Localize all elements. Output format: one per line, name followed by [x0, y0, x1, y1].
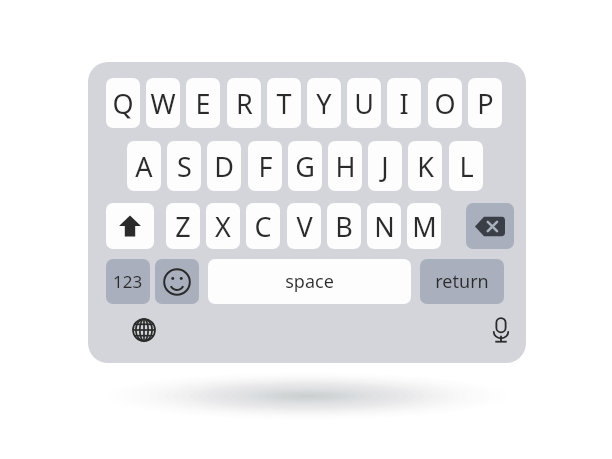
staticText: space [285, 269, 334, 294]
button[interactable]: Y [307, 78, 341, 128]
staticText: W [150, 85, 176, 122]
button[interactable]: M [407, 203, 441, 249]
button[interactable]: space [208, 259, 411, 304]
staticText: Z [175, 208, 191, 245]
button[interactable]: I [387, 78, 421, 128]
button[interactable]: Change keyboard language [126, 312, 162, 348]
button[interactable]: B [327, 203, 361, 249]
button[interactable]: F [248, 141, 282, 191]
button[interactable]: V [287, 203, 321, 249]
button[interactable]: R [227, 78, 261, 128]
staticText: J [381, 148, 389, 185]
staticText: A [135, 148, 153, 185]
button[interactable]: Numbers [106, 259, 150, 304]
staticText: T [276, 85, 292, 122]
staticText: D [214, 148, 234, 185]
button[interactable]: D [207, 141, 241, 191]
staticText: 123 [113, 270, 143, 293]
staticText: I [399, 85, 409, 122]
button[interactable]: Q [106, 78, 140, 128]
staticText: R [236, 85, 253, 122]
staticText: E [195, 85, 211, 122]
button[interactable]: E [186, 78, 220, 128]
staticText: B [335, 208, 353, 245]
button[interactable]: C [246, 203, 280, 249]
button[interactable]: return [420, 259, 504, 304]
button[interactable]: U [347, 78, 381, 128]
button[interactable]: K [408, 141, 442, 191]
button[interactable]: N [367, 203, 401, 249]
button[interactable]: Z [166, 203, 200, 249]
staticText: Y [316, 85, 332, 122]
button[interactable]: S [167, 141, 201, 191]
staticText: F [258, 148, 273, 185]
staticText: Q [112, 85, 134, 122]
button[interactable]: W [146, 78, 180, 128]
button[interactable]: Emoji [155, 259, 199, 304]
staticText: M [412, 208, 437, 245]
button[interactable]: P [468, 78, 502, 128]
button[interactable]: X [206, 203, 240, 249]
staticText: L [459, 148, 474, 185]
button[interactable]: Shift [106, 203, 154, 249]
staticText: S [177, 148, 192, 185]
button[interactable]: Voice input [483, 312, 519, 348]
staticText: N [374, 208, 395, 245]
staticText: C [254, 208, 272, 245]
staticText: H [335, 148, 356, 185]
staticText: G [295, 148, 315, 185]
button[interactable]: L [449, 141, 483, 191]
staticText: X [215, 208, 231, 245]
button[interactable]: A [127, 141, 161, 191]
staticText: P [477, 85, 494, 122]
staticText: K [417, 148, 434, 185]
button[interactable]: J [368, 141, 402, 191]
button[interactable]: T [267, 78, 301, 128]
staticText: O [434, 85, 456, 122]
button[interactable]: Backspace [466, 203, 514, 249]
staticText: V [296, 208, 313, 245]
staticText: U [354, 85, 374, 122]
button[interactable]: H [328, 141, 362, 191]
button[interactable]: O [428, 78, 462, 128]
button[interactable]: G [288, 141, 322, 191]
staticText: return [435, 269, 489, 294]
